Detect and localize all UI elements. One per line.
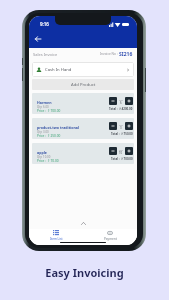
staticText: Price : ₹ 70.00 — [37, 159, 59, 163]
staticText: Qty: 3.00 — [37, 130, 49, 134]
button[interactable]: Payment — [83, 229, 137, 241]
button[interactable]: Decrease quantity — [109, 122, 117, 130]
staticText: Qty — [119, 123, 123, 126]
staticText: Item List — [50, 237, 63, 241]
button[interactable]: Increase quantity — [125, 147, 133, 155]
staticText: Price : ₹ 250.00 — [37, 134, 61, 138]
staticText: product-two traditional — [37, 125, 80, 130]
staticText: 3 — [120, 126, 122, 130]
staticText: 10 — [119, 151, 123, 155]
staticText: Add Product — [71, 82, 96, 88]
button[interactable]: Increase quantity — [125, 122, 133, 130]
staticText: Qty: 6.00 — [37, 105, 49, 109]
staticText: apple — [37, 150, 47, 155]
staticText: Easy Invoicing — [45, 265, 124, 280]
button[interactable]: product-two traditional — [32, 118, 134, 139]
button[interactable]: Cash In Hand — [32, 62, 134, 77]
button[interactable]: Increase quantity — [125, 97, 133, 105]
staticText: Total : ₹ 750.00 — [111, 132, 133, 136]
button[interactable]: Back — [32, 33, 43, 44]
button[interactable]: Decrease quantity — [109, 97, 117, 105]
button[interactable]: Item List — [29, 229, 83, 241]
staticText: 6 — [120, 101, 122, 105]
button[interactable]: apple — [32, 143, 134, 164]
staticText: Qty: 10.00 — [37, 155, 51, 159]
staticText: Harmen — [37, 100, 52, 105]
staticText: SI216 — [119, 51, 133, 57]
staticText: Total : ₹ 700.00 — [111, 157, 133, 161]
staticText: Qty — [119, 98, 123, 101]
staticText: Sales Invoice — [33, 52, 58, 57]
staticText: Cash In Hand — [45, 67, 72, 73]
staticText: Qty — [119, 148, 123, 151]
button[interactable]: Decrease quantity — [109, 147, 117, 155]
staticText: Total : ₹ 4200.00 — [109, 107, 133, 111]
staticText: Price : ₹ 700.00 — [37, 109, 61, 113]
staticText: Payment — [104, 237, 117, 241]
staticText: Invoice No : — [100, 52, 119, 56]
staticText: 9:16 — [40, 21, 49, 27]
button[interactable]: Harmen — [32, 93, 134, 114]
button[interactable]: Add Product — [32, 79, 134, 90]
